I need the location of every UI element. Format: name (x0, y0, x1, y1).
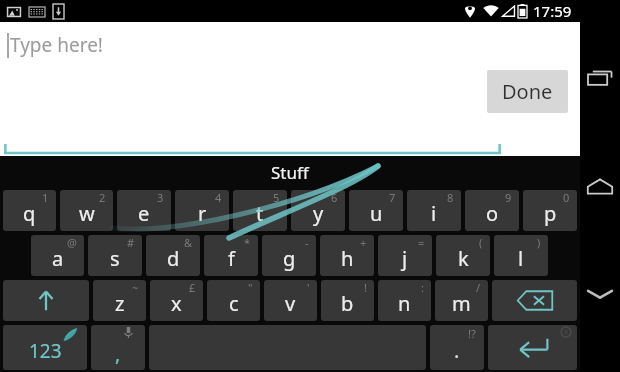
button[interactable]: Done (487, 70, 568, 113)
staticText: d (167, 245, 180, 272)
staticText: ( (479, 235, 483, 250)
button[interactable]: f (204, 235, 258, 276)
staticText: a (52, 245, 64, 272)
staticText: & (184, 235, 193, 250)
staticText: 7 (389, 190, 396, 205)
button[interactable]: b (321, 280, 374, 321)
staticText: Done (502, 78, 553, 105)
staticText: b (341, 290, 354, 317)
button[interactable]: Stuff (0, 156, 580, 188)
button[interactable]: Backspace (492, 280, 577, 321)
button[interactable]: Hide keyboard (580, 274, 620, 314)
staticText: ' (307, 280, 310, 295)
staticText: w (79, 200, 95, 227)
staticText: Type here! (10, 32, 103, 58)
staticText: y (313, 200, 324, 227)
staticText: ~ (132, 280, 139, 295)
staticText: - (305, 235, 309, 250)
button[interactable]: Recents (580, 58, 620, 98)
staticText: m (452, 290, 471, 317)
button[interactable]: p (523, 190, 577, 231)
staticText: 1 (42, 190, 49, 205)
staticText: n (398, 290, 411, 317)
staticText: x (171, 290, 182, 317)
staticText: , (115, 340, 121, 367)
button[interactable]: n (378, 280, 431, 321)
staticText: q (23, 200, 36, 227)
button[interactable]: j (378, 235, 432, 276)
staticText: 6 (331, 190, 338, 205)
button[interactable]: z (93, 280, 146, 321)
button[interactable]: . (430, 325, 484, 370)
staticText: l (518, 245, 524, 272)
button[interactable]: g (262, 235, 316, 276)
staticText: # (127, 235, 135, 250)
button[interactable]: o (465, 190, 519, 231)
staticText: 9 (505, 190, 512, 205)
staticText: j (402, 245, 408, 272)
button[interactable]: 123 (3, 325, 87, 370)
staticText: 4 (215, 190, 222, 205)
staticText: o (486, 200, 499, 227)
button[interactable]: t (233, 190, 287, 231)
staticText: ! (364, 280, 367, 295)
staticText: = (418, 235, 425, 250)
staticText: : (421, 280, 424, 295)
button[interactable]: i (407, 190, 461, 231)
button[interactable]: Home (580, 166, 620, 206)
staticText: 5 (273, 190, 280, 205)
staticText: t (256, 200, 264, 227)
button[interactable]: u (349, 190, 403, 231)
button[interactable]: l (494, 235, 548, 276)
button[interactable]: s (88, 235, 142, 276)
staticText: " (248, 280, 253, 295)
staticText: £ (189, 280, 196, 295)
button[interactable]: w (60, 190, 113, 231)
button[interactable]: a (31, 235, 84, 276)
staticText: c (229, 290, 239, 317)
button[interactable]: k (436, 235, 490, 276)
staticText: ) (537, 235, 541, 250)
staticText: u (370, 200, 383, 227)
button[interactable]: v (264, 280, 317, 321)
staticText: i (431, 200, 437, 227)
staticText: r (198, 200, 207, 227)
staticText: @ (67, 235, 77, 250)
button[interactable]: h (320, 235, 374, 276)
button[interactable]: y (291, 190, 345, 231)
staticText: 8 (447, 190, 454, 205)
staticText: 3 (157, 190, 164, 205)
staticText: s (110, 245, 120, 272)
staticText: g (283, 245, 296, 272)
staticText: f (228, 245, 235, 272)
staticText: 0 (563, 190, 570, 205)
staticText: * (244, 235, 251, 250)
staticText: 17:59 (533, 1, 572, 21)
button[interactable]: q (3, 190, 56, 231)
button[interactable]: Enter (488, 325, 577, 370)
staticText: 2 (99, 190, 106, 205)
staticText: / (476, 280, 481, 295)
button[interactable]: c (207, 280, 260, 321)
button[interactable]: r (175, 190, 229, 231)
staticText: h (341, 245, 354, 272)
button[interactable]: e (117, 190, 171, 231)
button[interactable]: m (435, 280, 488, 321)
staticText: + (360, 235, 367, 250)
staticText: !? (468, 326, 476, 341)
staticText: e (138, 200, 150, 227)
staticText: . (454, 337, 460, 364)
staticText: p (544, 200, 557, 227)
staticText: Stuff (271, 161, 309, 184)
button[interactable]: Shift (3, 280, 89, 321)
staticText: z (115, 290, 125, 317)
staticText: 123 (29, 338, 62, 364)
staticText: k (458, 245, 469, 272)
staticText: v (285, 290, 296, 317)
button[interactable]: x (150, 280, 203, 321)
button[interactable]: , (91, 325, 145, 370)
button[interactable]: d (146, 235, 200, 276)
